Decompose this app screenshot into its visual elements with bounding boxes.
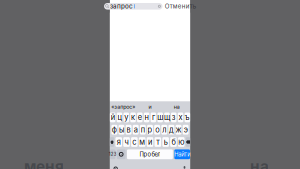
button[interactable]: ц: [117, 112, 122, 122]
staticText: й: [111, 113, 115, 122]
button[interactable]: а: [133, 125, 139, 135]
staticText: с: [132, 137, 136, 146]
staticText: з: [172, 113, 176, 122]
button[interactable]: Emoji: [117, 149, 125, 159]
staticText: ы: [119, 125, 124, 134]
button[interactable]: Emoji: [113, 164, 118, 168]
staticText: т: [156, 137, 159, 146]
staticText: «запрос»: [111, 104, 135, 110]
button[interactable]: и: [147, 137, 153, 147]
staticText: у: [124, 113, 128, 122]
staticText: ю: [178, 137, 184, 146]
staticText: р: [147, 125, 152, 134]
button[interactable]: н: [144, 112, 149, 122]
staticText: о: [155, 125, 159, 134]
button[interactable]: с: [131, 137, 138, 147]
staticText: 123: [109, 152, 117, 157]
staticText: н: [145, 113, 149, 122]
button[interactable]: я: [115, 137, 122, 147]
staticText: ш: [157, 113, 163, 122]
button[interactable]: ч: [123, 137, 130, 147]
button[interactable]: п: [140, 125, 146, 135]
button[interactable]: р: [147, 125, 153, 135]
button[interactable]: Пробел: [127, 149, 173, 159]
button[interactable]: к: [130, 112, 136, 122]
staticText: ж: [175, 125, 181, 134]
button[interactable]: Dictation: [182, 164, 186, 169]
button[interactable]: й: [110, 112, 115, 122]
staticText: к: [131, 113, 135, 122]
button[interactable]: ъ: [185, 112, 190, 122]
button[interactable]: 123: [110, 149, 115, 159]
staticText: и: [148, 137, 152, 146]
button[interactable]: Shift: [110, 137, 114, 147]
button[interactable]: ш: [157, 112, 163, 122]
staticText: э: [184, 125, 188, 134]
staticText: и: [148, 104, 151, 110]
button[interactable]: в: [126, 125, 132, 135]
button[interactable]: г: [151, 112, 156, 122]
button[interactable]: м: [139, 137, 145, 147]
staticText: меня: [24, 157, 64, 169]
button[interactable]: з: [171, 112, 176, 122]
button[interactable]: ф: [111, 125, 117, 135]
staticText: д: [169, 125, 174, 134]
button[interactable]: л: [161, 125, 167, 135]
staticText: х: [178, 113, 182, 122]
button[interactable]: ю: [178, 137, 185, 147]
button[interactable]: у: [123, 112, 129, 122]
button[interactable]: о: [154, 125, 160, 135]
staticText: на: [250, 157, 269, 169]
button[interactable]: ж: [176, 125, 181, 135]
staticText: Отменить: [165, 3, 196, 10]
button[interactable]: Delete: [186, 137, 190, 147]
staticText: щ: [164, 113, 170, 122]
button[interactable]: э: [183, 125, 189, 135]
staticText: б: [171, 137, 175, 146]
staticText: м: [139, 137, 145, 146]
button[interactable]: е: [137, 112, 143, 122]
staticText: г: [152, 113, 155, 122]
staticText: на: [174, 104, 180, 110]
staticText: а: [134, 125, 138, 134]
button[interactable]: х: [178, 112, 183, 122]
staticText: ь: [164, 137, 168, 146]
staticText: Пробел: [139, 151, 160, 158]
button[interactable]: д: [168, 125, 174, 135]
staticText: л: [162, 125, 166, 134]
staticText: п: [141, 125, 145, 134]
staticText: ф: [112, 125, 117, 134]
staticText: ц: [117, 113, 121, 122]
button[interactable]: ы: [118, 125, 124, 135]
staticText: ч: [124, 137, 128, 146]
staticText: в: [127, 125, 131, 134]
staticText: запрос: [110, 2, 133, 10]
button[interactable]: т: [154, 137, 161, 147]
staticText: ъ: [185, 113, 190, 122]
button[interactable]: Найти: [174, 149, 190, 159]
button[interactable]: ь: [162, 137, 169, 147]
button[interactable]: Отменить: [165, 3, 196, 10]
button[interactable]: щ: [164, 112, 170, 122]
staticText: Найти: [174, 151, 190, 158]
staticText: я: [117, 137, 121, 146]
staticText: е: [138, 113, 142, 122]
button[interactable]: б: [170, 137, 177, 147]
